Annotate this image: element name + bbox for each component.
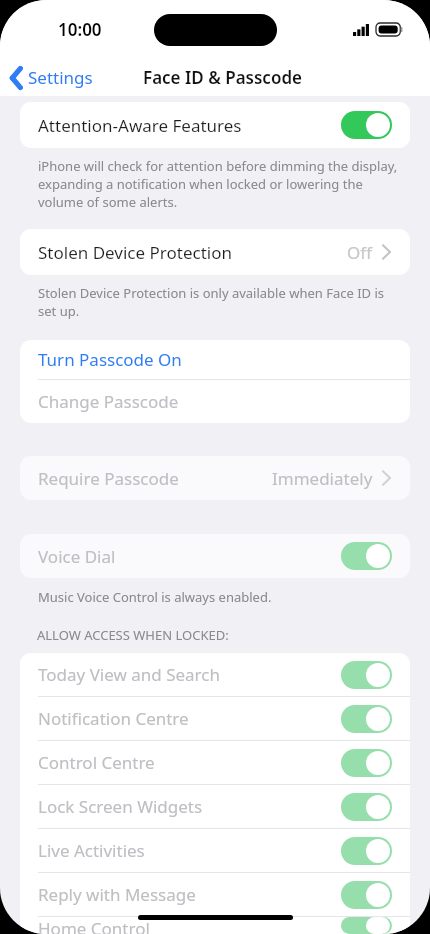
button[interactable]: Toggle on <box>341 705 392 733</box>
button[interactable]: Toggle on <box>341 837 392 865</box>
staticText: Reply with Message <box>38 883 341 906</box>
button[interactable]: Change Passcode <box>20 380 410 423</box>
staticText: iPhone will check for attention before d… <box>38 157 400 211</box>
staticText: Require Passcode <box>38 467 272 490</box>
staticText: Music Voice Control is always enabled. <box>38 588 272 606</box>
button[interactable]: Control Centre <box>20 741 410 784</box>
button[interactable]: Voice Dial <box>20 534 410 578</box>
button[interactable]: Today View and Search <box>20 653 410 696</box>
button[interactable]: Toggle on <box>341 881 392 909</box>
staticText: Voice Dial <box>38 545 341 568</box>
button[interactable]: Toggle on <box>341 793 392 821</box>
staticText: ALLOW ACCESS WHEN LOCKED: <box>37 626 229 644</box>
staticText: Live Activities <box>38 839 341 862</box>
staticText: Change Passcode <box>38 390 179 413</box>
button[interactable]: Toggle on <box>341 917 392 934</box>
staticText: Face ID & Passcode <box>143 66 302 89</box>
button[interactable]: Toggle on <box>341 749 392 777</box>
button[interactable]: Settings <box>0 62 101 93</box>
staticText: Turn Passcode On <box>38 348 182 371</box>
staticText: Lock Screen Widgets <box>38 795 341 818</box>
staticText: Settings <box>28 66 93 89</box>
staticText: Notification Centre <box>38 707 341 730</box>
staticText: Today View and Search <box>38 663 341 686</box>
staticText: Control Centre <box>38 751 341 774</box>
staticText: Home Control <box>38 917 341 934</box>
button[interactable]: Toggle on <box>341 661 392 689</box>
button[interactable]: Home Control <box>20 917 410 934</box>
button[interactable]: Reply with Message <box>20 873 410 916</box>
button[interactable]: Notification Centre <box>20 697 410 740</box>
button[interactable]: Lock Screen Widgets <box>20 785 410 828</box>
button[interactable]: Toggle on <box>341 542 392 570</box>
button[interactable]: Attention-Aware Features <box>20 102 410 148</box>
staticText: Attention-Aware Features <box>38 114 341 137</box>
staticText: Stolen Device Protection <box>38 241 347 264</box>
button[interactable]: Live Activities <box>20 829 410 872</box>
staticText: Off <box>347 241 372 264</box>
button[interactable]: Toggle on <box>341 111 392 139</box>
staticText: Immediately <box>272 467 373 490</box>
button[interactable]: Require Passcode <box>20 456 410 500</box>
staticText: Stolen Device Protection is only availab… <box>38 284 385 320</box>
button[interactable]: Stolen Device Protection <box>20 229 410 275</box>
staticText: 10:00 <box>58 18 102 41</box>
button[interactable]: Turn Passcode On <box>20 340 410 379</box>
